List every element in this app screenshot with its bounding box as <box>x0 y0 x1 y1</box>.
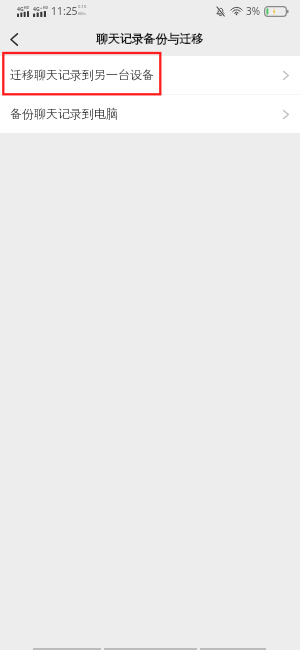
staticText: 3% <box>246 4 261 18</box>
staticText: 11:25 <box>51 4 78 18</box>
staticText: 4G <box>33 5 40 12</box>
staticText: 聊天记录备份与迁移 <box>96 32 204 47</box>
staticText: HD <box>24 5 29 9</box>
staticText: KB/s <box>78 11 86 16</box>
staticText: 0.10 <box>78 4 87 10</box>
staticText: 备份聊天记录到电脑 <box>10 106 118 121</box>
staticText: + <box>40 5 43 10</box>
staticText: HD <box>43 5 48 9</box>
staticText: 4G <box>17 5 24 12</box>
staticText: 迁移聊天记录到另一台设备 <box>10 67 154 82</box>
button[interactable]: 备份聊天记录到电脑 <box>0 95 300 133</box>
button[interactable]: Back <box>0 22 27 56</box>
button[interactable]: 迁移聊天记录到另一台设备 <box>0 56 300 94</box>
